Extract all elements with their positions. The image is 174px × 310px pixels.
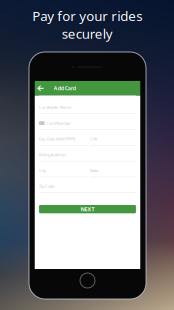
staticText: Add Card	[54, 85, 76, 92]
staticText: NEXT	[80, 206, 94, 213]
staticText: CVV	[90, 136, 97, 141]
staticText: Pay for your rides securely	[32, 7, 142, 42]
staticText: State	[90, 168, 98, 173]
button[interactable]: NEXT	[39, 205, 136, 213]
staticText: Cardholder Name	[39, 105, 71, 110]
staticText: Exp. Date (MM/YYYY)	[39, 136, 75, 141]
staticText: Billing Address	[39, 152, 66, 157]
button[interactable]: Back	[36, 82, 45, 95]
staticText: City	[39, 168, 46, 173]
staticText: Zip Code	[39, 184, 54, 189]
staticText: Card Number	[46, 120, 71, 126]
